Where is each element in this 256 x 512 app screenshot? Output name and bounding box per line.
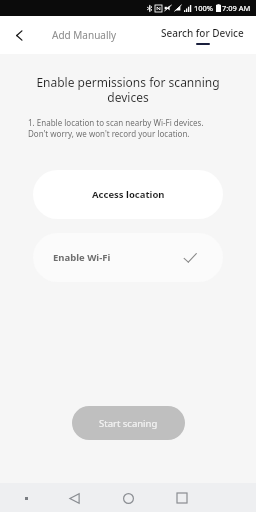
button[interactable]: Enable Wi-Fi: [33, 233, 223, 282]
staticText: Search for Device: [161, 26, 244, 40]
staticText: Start scaning: [99, 417, 158, 430]
staticText: Enable Wi-Fi: [53, 251, 111, 264]
staticText: 1. Enable location to scan nearby Wi-Fi …: [28, 117, 236, 140]
staticText: 7:09 AM: [222, 3, 251, 13]
button[interactable]: Back: [8, 24, 30, 46]
button[interactable]: Recent apps: [170, 486, 194, 510]
staticText: Enable permissions for scanning devices: [16, 74, 240, 105]
staticText: 100%: [194, 3, 214, 13]
button[interactable]: Access location: [33, 170, 223, 219]
staticText: Access location: [92, 188, 165, 201]
button[interactable]: Menu: [16, 488, 36, 508]
button[interactable]: Add Manually: [52, 28, 117, 42]
button[interactable]: Back: [62, 486, 86, 510]
button[interactable]: Home: [116, 486, 140, 510]
button[interactable]: Start scaning: [72, 406, 185, 440]
staticText: Add Manually: [52, 28, 117, 42]
button[interactable]: Search for Device: [161, 26, 244, 45]
